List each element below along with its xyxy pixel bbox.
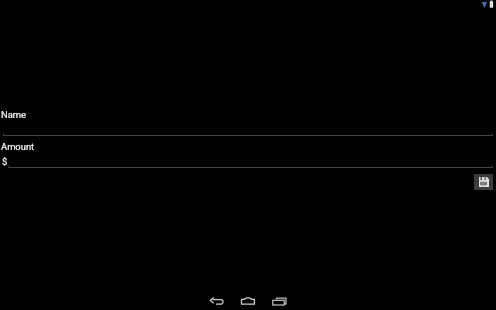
button[interactable]: Home — [232, 288, 264, 310]
staticText: $ — [2, 156, 8, 167]
button[interactable]: Save — [474, 174, 493, 190]
staticText: Name — [1, 109, 27, 120]
button[interactable]: Recent apps — [263, 288, 295, 310]
staticText: Amount — [1, 141, 35, 152]
button[interactable]: Back — [201, 288, 233, 310]
